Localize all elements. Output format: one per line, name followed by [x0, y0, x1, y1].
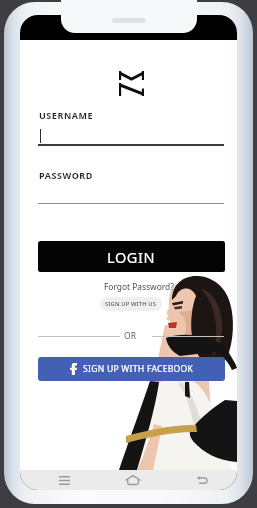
staticText: OR	[124, 330, 136, 342]
button[interactable]: Back	[164, 470, 237, 490]
button[interactable]: Home	[92, 470, 164, 490]
staticText: Forgot Password?	[104, 281, 174, 292]
staticText: LOGIN	[107, 247, 156, 267]
button[interactable]: LOGIN	[38, 241, 225, 272]
staticText: SIGN UP WITH FACEBOOK	[83, 363, 194, 375]
staticText: PASSWORD	[39, 169, 93, 181]
button[interactable]: Recent apps	[20, 470, 92, 490]
staticText: USERNAME	[39, 109, 94, 121]
button[interactable]: Forgot Password?	[104, 281, 174, 292]
staticText: SIGN UP WITH US	[105, 300, 157, 308]
button[interactable]: SIGN UP WITH US	[100, 297, 162, 311]
button[interactable]: SIGN UP WITH FACEBOOK	[38, 357, 225, 381]
